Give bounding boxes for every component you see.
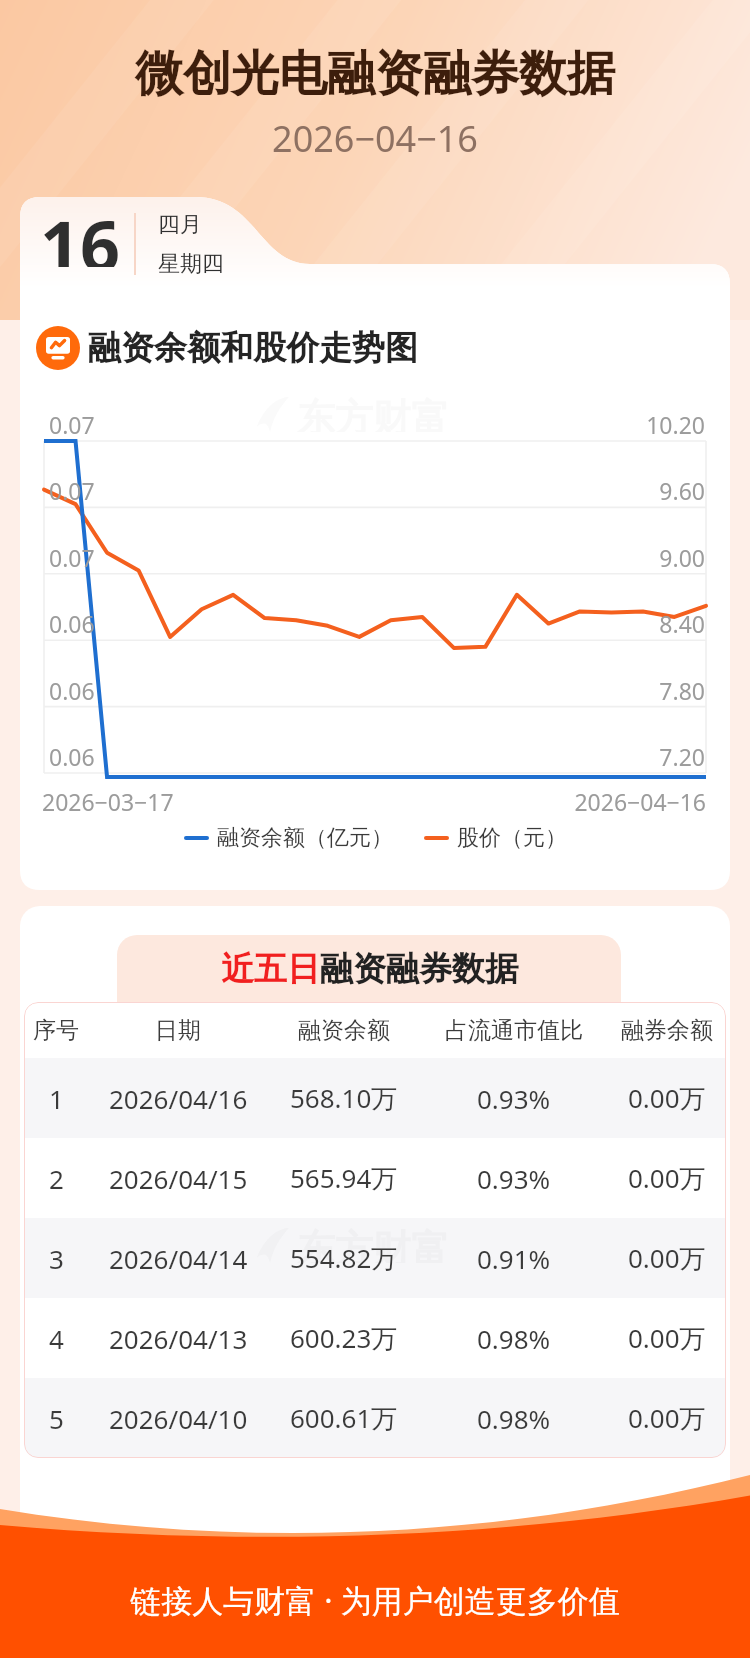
staticText: 2026/04/14 [109,1241,248,1276]
staticText: 近五日融资融券数据 [221,948,518,990]
staticText: 0.06 [49,608,95,639]
button[interactable]: Trend chart [36,326,418,370]
staticText: 0.06 [49,741,95,772]
staticText: 2026/04/15 [109,1161,248,1196]
staticText: 554.82万 [290,1240,398,1276]
staticText: 微创光电融资融券数据 [0,44,750,104]
staticText: 2 [49,1161,64,1196]
staticText: 日期 [155,1016,201,1045]
staticText: 东方财富 [297,1225,449,1263]
staticText: 4 [49,1321,64,1356]
button[interactable]: 5 [24,1378,726,1458]
staticText: 9.00 [0,542,705,573]
staticText: 8.40 [0,608,705,639]
staticText: 占流通市值比 [445,1016,583,1045]
staticText: 0.07 [49,409,95,440]
staticText: 0.98% [477,1321,551,1356]
staticText: 2026/04/16 [109,1081,248,1116]
staticText: 16 [40,197,121,267]
staticText: 股价（元） [457,824,567,852]
staticText: 2026/04/10 [109,1401,248,1436]
staticText: 2026−04−16 [0,786,706,817]
staticText: 7.20 [0,741,705,772]
staticText: 9.60 [0,475,705,506]
button[interactable]: 1 [24,1058,726,1138]
staticText: 0.06 [49,675,95,706]
staticText: 0.00万 [628,1160,706,1196]
button[interactable]: 3 [24,1218,726,1298]
staticText: 四月 [158,211,202,239]
staticText: 融券余额 [621,1016,713,1045]
staticText: 融资余额（亿元） [217,824,393,852]
staticText: 600.61万 [290,1400,398,1436]
staticText: 2026−03−17 [42,786,174,817]
staticText: 0.07 [49,542,95,573]
staticText: 星期四 [158,250,224,278]
button[interactable]: 4 [24,1298,726,1378]
staticText: 链接人与财富 · 为用户创造更多价值 [0,1579,750,1621]
staticText: 2026−04−16 [0,114,750,163]
staticText: 0.93% [477,1081,551,1116]
staticText: 5 [49,1401,64,1436]
staticText: 2026/04/13 [109,1321,248,1356]
staticText: 0.00万 [628,1080,706,1116]
staticText: 融资余额 [298,1016,390,1045]
staticText: 0.93% [477,1161,551,1196]
button[interactable]: 2 [24,1138,726,1218]
staticText: 0.00万 [628,1320,706,1356]
staticText: 565.94万 [290,1160,398,1196]
staticText: 7.80 [0,675,705,706]
staticText: 568.10万 [290,1080,398,1116]
staticText: 0.07 [49,475,95,506]
other: Trend chart [36,326,80,370]
staticText: 融资余额和股价走势图 [88,327,418,369]
button[interactable]: 股价（元） [424,824,567,852]
staticText: 0.98% [477,1401,551,1436]
staticText: 序号 [33,1016,79,1045]
staticText: 0.91% [477,1241,551,1276]
staticText: 600.23万 [290,1320,398,1356]
button[interactable]: 融资余额（亿元） [184,824,393,852]
staticText: 10.20 [0,409,705,440]
staticText: 3 [49,1241,64,1276]
staticText: 1 [49,1081,64,1116]
staticText: 0.00万 [628,1400,706,1436]
staticText: 0.00万 [628,1240,706,1276]
